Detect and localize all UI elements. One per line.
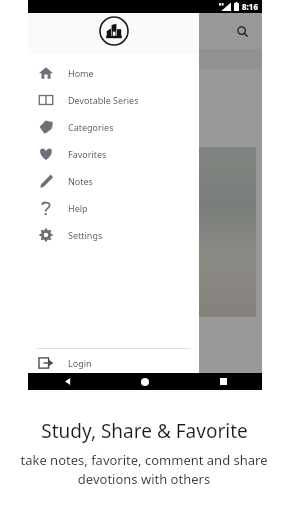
button[interactable]: Notes xyxy=(28,167,199,194)
staticText: Home xyxy=(68,67,94,79)
button[interactable]: Recents xyxy=(184,373,262,390)
button[interactable]: Help xyxy=(28,194,199,221)
button[interactable]: Login xyxy=(28,349,199,376)
button[interactable]: Search xyxy=(232,21,252,41)
staticText: Categories xyxy=(68,121,114,133)
button[interactable]: Settings xyxy=(28,221,199,248)
staticText: Study, Share & Favorite xyxy=(41,418,248,444)
button[interactable]: Home xyxy=(28,59,199,86)
staticText: Devotable Series xyxy=(68,94,139,106)
button[interactable]: Categories xyxy=(28,113,199,140)
staticText: Help xyxy=(68,202,88,214)
staticText: Favorites xyxy=(68,148,107,160)
staticText: Notes xyxy=(68,175,93,187)
button[interactable]: Devotable Series xyxy=(28,86,199,113)
button[interactable]: Favorites xyxy=(28,140,199,167)
staticText: Login xyxy=(68,357,92,369)
staticText: Settings xyxy=(68,229,103,241)
staticText: take notes, favorite, comment and share … xyxy=(20,451,268,488)
staticText: 8:16 xyxy=(242,1,258,12)
button[interactable]: Home xyxy=(106,373,184,390)
button[interactable]: Back xyxy=(28,373,106,390)
